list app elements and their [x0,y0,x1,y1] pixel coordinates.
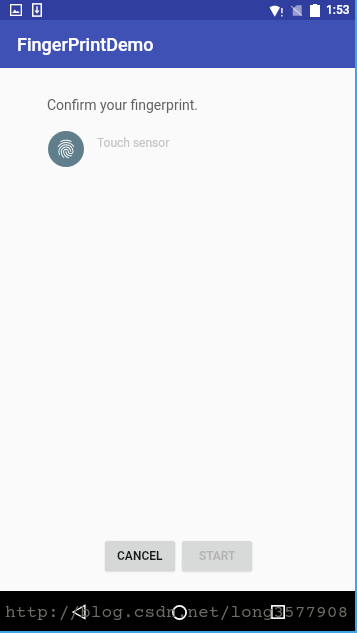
staticText: http://blog.csdn.net/long3577908 [5,603,349,623]
staticText: FingerPrintDemo [17,34,154,55]
staticText: 1:53 [326,3,350,17]
button[interactable]: START [182,541,252,571]
staticText: Confirm your fingerprint. [47,97,199,113]
staticText: START [199,549,236,563]
staticText: Touch sensor [97,136,170,150]
button[interactable]: Recents [258,592,298,632]
button[interactable]: Back [59,592,99,632]
button[interactable]: Home [159,592,199,632]
button[interactable]: CANCEL [105,541,175,571]
staticText: CANCEL [117,549,163,563]
